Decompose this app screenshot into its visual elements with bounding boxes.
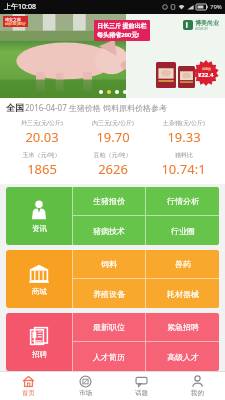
button[interactable]: 饲料 (73, 250, 145, 278)
staticText: 资讯 (32, 224, 47, 233)
staticText: 19.70 (96, 128, 130, 146)
button[interactable]: 土杂猪(元/公斤) (148, 119, 219, 146)
button[interactable]: 首页 (0, 372, 57, 400)
staticText: 博美尚业 (195, 19, 219, 27)
button[interactable]: 最新职位 (73, 313, 145, 341)
staticText: 商城 (32, 287, 47, 296)
button[interactable]: 资讯 (6, 187, 72, 245)
staticText: 玉米（元/吨） (22, 151, 61, 159)
button[interactable]: 养殖设备 (73, 279, 145, 308)
staticText: 猪宝之家 (5, 17, 21, 22)
button[interactable]: 商城 (6, 250, 72, 308)
staticText: 日长三斤 提前出栏 (97, 22, 147, 30)
button[interactable]: 高级人才 (146, 342, 219, 371)
staticText: 行情分析 (167, 196, 199, 206)
staticText: 1865 (27, 160, 57, 178)
staticText: 20.03 (25, 128, 59, 146)
staticText: 我的 (191, 389, 204, 397)
button[interactable]: 生猪报价 (73, 187, 145, 215)
staticText: ¥22.4 (198, 71, 214, 79)
button[interactable]: 外三元(元/公斤) (6, 119, 77, 146)
staticText: 上午10:08 (4, 2, 36, 12)
button[interactable]: 猪病技术 (73, 216, 145, 245)
staticText: 精养130|305斤 (5, 22, 26, 26)
staticText: 全国 (6, 102, 24, 113)
staticText: 2016-04-07 生猪价格 饲料原料价格参考 (25, 102, 167, 113)
staticText: 兽药 (175, 259, 191, 269)
staticText: 豆粕（元/吨） (93, 151, 132, 159)
staticText: 紧急招聘 (167, 322, 199, 332)
button[interactable]: 市场 (57, 372, 113, 400)
staticText: 79% (210, 3, 222, 11)
button[interactable]: 兽药 (146, 250, 219, 278)
staticText: 土杂猪(元/公斤) (163, 119, 205, 127)
staticText: BOMEISY (195, 27, 209, 31)
button[interactable]: 人才简历 (73, 342, 145, 371)
staticText: 猪料比 (175, 151, 193, 159)
staticText: 饲料 (101, 259, 117, 269)
staticText: 内三元(元/公斤) (92, 119, 134, 127)
staticText: 高级人才 (167, 352, 199, 362)
staticText: 耗材器械 (167, 289, 199, 299)
staticText: 优惠价 (202, 67, 211, 71)
button[interactable]: 玉米（元/吨） (6, 151, 77, 178)
staticText: 2626 (98, 160, 128, 178)
button[interactable]: 行情分析 (146, 187, 219, 215)
staticText: 养殖设备 (93, 289, 125, 299)
staticText: 人才简历 (93, 352, 125, 362)
staticText: 招聘 (32, 350, 47, 359)
staticText: 最新职位 (93, 322, 125, 332)
button[interactable]: 紧急招聘 (146, 313, 219, 341)
button[interactable]: 耗材器械 (146, 279, 219, 308)
staticText: 话题 (135, 389, 148, 397)
staticText: 19.33 (167, 128, 201, 146)
button[interactable]: 豆粕（元/吨） (77, 151, 148, 178)
staticText: 首页 (22, 389, 35, 397)
staticText: 外三元(元/公斤) (21, 119, 63, 127)
button[interactable]: 猪料比 (148, 151, 219, 178)
staticText: 10.74:1 (161, 160, 206, 178)
staticText: 猪病技术 (93, 226, 125, 236)
staticText: 每头猪省200元! (97, 31, 139, 39)
staticText: 市场 (79, 389, 92, 397)
staticText: 生猪报价 (93, 196, 125, 206)
staticText: 行业圈 (171, 226, 195, 236)
button[interactable]: 话题 (113, 372, 169, 400)
button[interactable]: 内三元(元/公斤) (77, 119, 148, 146)
button[interactable]: 我的 (169, 372, 225, 400)
button[interactable]: 行业圈 (146, 216, 219, 245)
button[interactable]: 招聘 (6, 313, 72, 371)
